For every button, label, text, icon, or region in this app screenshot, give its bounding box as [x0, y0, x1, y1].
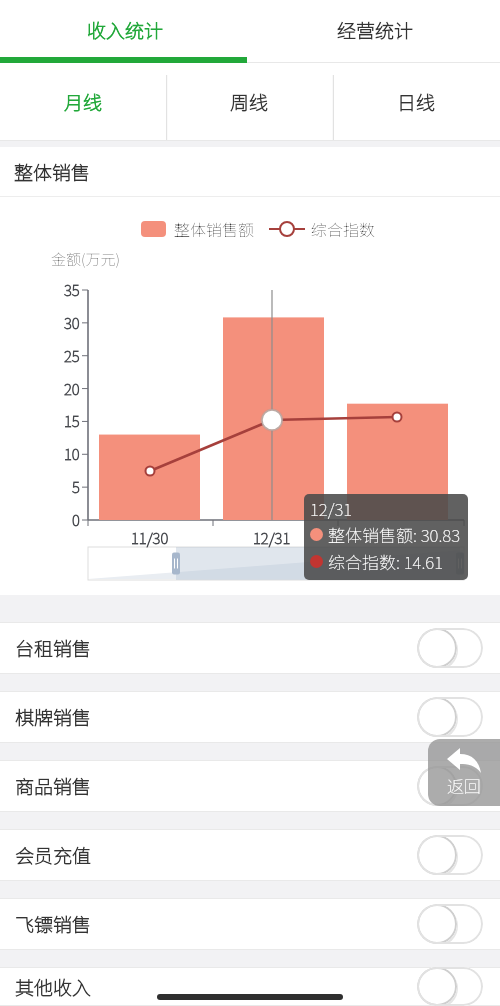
staticText: 0: [72, 509, 80, 531]
button[interactable]: 商品销售: [0, 760, 500, 812]
staticText: 金额(万元): [51, 248, 120, 270]
staticText: 飞镖销售: [15, 910, 92, 938]
button[interactable]: 台租销售: [0, 622, 500, 674]
staticText: 棋牌销售: [15, 703, 92, 731]
button[interactable]: 周线: [166, 63, 333, 141]
staticText: 整体销售额: [174, 217, 255, 240]
staticText: 台租销售: [15, 634, 92, 662]
staticText: 经营统计: [337, 16, 414, 44]
staticText: 10: [64, 443, 80, 465]
staticText: 15: [64, 410, 80, 432]
button[interactable]: 收入统计: [0, 0, 250, 63]
button[interactable]: 棋牌销售: [0, 691, 500, 743]
staticText: 棋牌销售: [15, 703, 92, 731]
staticText: 日线: [397, 88, 436, 116]
staticText: 周线: [230, 88, 269, 116]
staticText: 25: [64, 345, 80, 367]
button[interactable]: [417, 967, 483, 1006]
staticText: 15: [64, 410, 80, 432]
button[interactable]: 飞镖销售: [0, 898, 500, 950]
button[interactable]: [417, 766, 483, 806]
button[interactable]: [417, 835, 483, 875]
staticText: 商品销售: [15, 772, 92, 800]
staticText: 0: [72, 509, 80, 531]
staticText: 周线: [230, 88, 269, 116]
button[interactable]: 会员充值: [0, 829, 500, 881]
staticText: 整体销售: [14, 158, 91, 186]
staticText: 35: [64, 279, 80, 301]
staticText: 12/31: [253, 527, 291, 549]
staticText: 5: [72, 476, 80, 498]
staticText: 月线: [64, 88, 103, 116]
staticText: 10: [64, 443, 80, 465]
staticText: 其他收入: [15, 973, 92, 1001]
staticText: 35: [64, 279, 80, 301]
staticText: 台租销售: [15, 634, 92, 662]
staticText: 收入统计: [87, 16, 164, 44]
staticText: 综合指数: [311, 217, 376, 240]
staticText: 11/30: [131, 527, 169, 549]
staticText: 返回: [447, 773, 481, 798]
staticText: 会员充值: [15, 841, 92, 869]
button[interactable]: 日线: [333, 63, 500, 141]
button[interactable]: 其他收入: [0, 967, 500, 1006]
staticText: 商品销售: [15, 772, 92, 800]
staticText: 飞镖销售: [15, 910, 92, 938]
staticText: 12/31: [310, 496, 353, 521]
staticText: 会员充值: [15, 841, 92, 869]
staticText: 经营统计: [337, 16, 414, 44]
button[interactable]: [417, 904, 483, 944]
staticText: 整体销售: [14, 158, 91, 186]
button[interactable]: 返回: [428, 739, 500, 806]
button[interactable]: [417, 628, 483, 668]
staticText: 12/31: [253, 527, 291, 549]
button[interactable]: 月线: [0, 63, 166, 141]
staticText: 收入统计: [87, 16, 164, 44]
staticText: 综合指数: 14.61: [328, 549, 444, 574]
staticText: 11/30: [131, 527, 169, 549]
staticText: 30: [64, 312, 80, 334]
button[interactable]: 经营统计: [250, 0, 500, 63]
staticText: 20: [64, 378, 80, 400]
staticText: 5: [72, 476, 80, 498]
staticText: 其他收入: [15, 973, 92, 1001]
staticText: 25: [64, 345, 80, 367]
staticText: 30: [64, 312, 80, 334]
button[interactable]: [417, 697, 483, 737]
staticText: 20: [64, 378, 80, 400]
staticText: 整体销售额: 30.83: [328, 522, 461, 547]
staticText: 月线: [64, 88, 103, 116]
staticText: 日线: [397, 88, 436, 116]
